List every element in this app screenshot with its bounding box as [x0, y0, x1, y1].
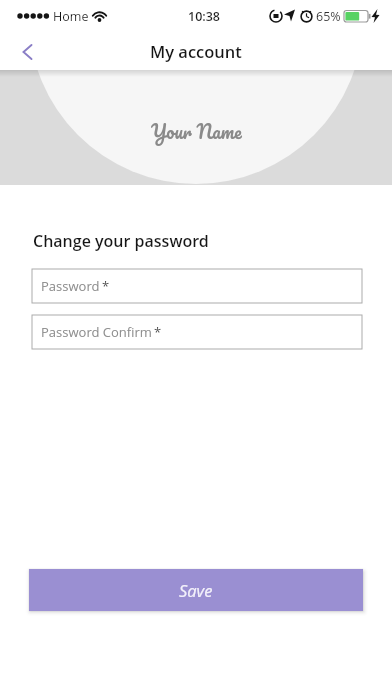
staticText: *: [154, 323, 162, 341]
staticText: Your Name: [151, 116, 242, 148]
staticText: Password: [41, 277, 100, 295]
staticText: My account: [150, 40, 242, 62]
staticText: Change your password: [33, 230, 209, 252]
staticText: Save: [179, 579, 213, 601]
staticText: 65%: [316, 8, 341, 25]
staticText: *: [102, 277, 110, 295]
staticText: 10:38: [188, 8, 220, 25]
staticText: Home: [53, 8, 89, 25]
staticText: Password Confirm: [41, 323, 152, 341]
